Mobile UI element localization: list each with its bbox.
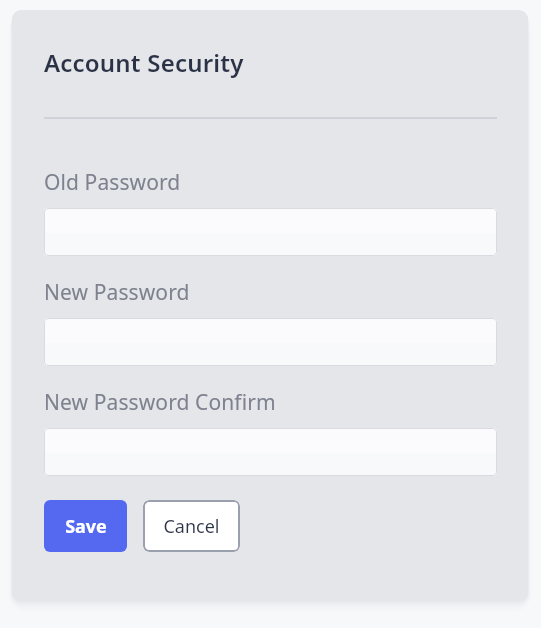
staticText: New Password Confirm: [44, 388, 276, 417]
staticText: Save: [65, 514, 107, 539]
button[interactable]: Save: [44, 500, 127, 552]
staticText: Old Password: [44, 168, 181, 197]
button[interactable]: Password input: [44, 208, 497, 256]
staticText: Account Security: [44, 46, 244, 79]
staticText: New Password: [44, 278, 190, 307]
button[interactable]: Password input: [44, 428, 497, 476]
staticText: Cancel: [163, 514, 220, 539]
button[interactable]: Password input: [44, 318, 497, 366]
button[interactable]: Cancel: [143, 500, 240, 552]
